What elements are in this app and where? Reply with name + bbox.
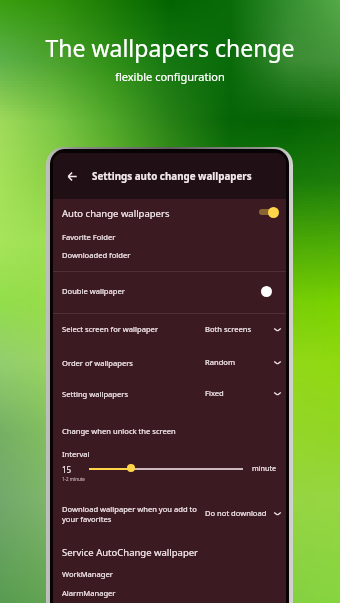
button[interactable]: WorkManager: [62, 568, 113, 579]
button[interactable]: Change when unlock the screen: [62, 425, 176, 436]
button[interactable]: Interval: [62, 448, 90, 459]
staticText: WorkManager: [62, 569, 113, 579]
button[interactable]: Back: [64, 168, 80, 184]
button[interactable]: Setting wallpapers: [62, 388, 129, 399]
staticText: Settings auto change wallpapers: [92, 170, 252, 183]
staticText: Both screens: [205, 324, 252, 334]
staticText: Service AutoChange wallpaper: [62, 546, 199, 559]
staticText: Do not download: [205, 508, 267, 518]
staticText: flexible configuration: [115, 69, 225, 84]
button[interactable]: Fixed: [205, 385, 281, 401]
button[interactable]: Do not download: [205, 505, 281, 521]
button[interactable]: Favorite Folder: [62, 231, 116, 242]
button[interactable]: your favorites: [62, 513, 112, 524]
staticText: your favorites: [62, 514, 112, 524]
staticText: Favorite Folder: [62, 232, 116, 242]
button[interactable]: Double wallpaper: [62, 285, 125, 296]
button[interactable]: 1-2 minute: [62, 475, 85, 482]
staticText: Auto change wallpapers: [62, 207, 170, 220]
staticText: Select screen for wallpaper: [62, 324, 159, 334]
button[interactable]: Select screen for wallpaper: [62, 323, 159, 334]
button[interactable]: Both screens: [205, 321, 281, 337]
staticText: Double wallpaper: [62, 286, 125, 296]
button[interactable]: Auto change wallpapers: [62, 206, 170, 220]
button[interactable]: AlarmManager: [62, 587, 116, 598]
staticText: Setting wallpapers: [62, 389, 129, 399]
staticText: Random: [205, 357, 236, 367]
staticText: Change when unlock the screen: [62, 426, 176, 436]
staticText: Order of wallpapers: [62, 358, 133, 368]
staticText: Download wallpaper when you add to: [62, 504, 197, 514]
button[interactable]: Auto change wallpapers toggle: [256, 204, 282, 220]
staticText: 1-2 minute: [62, 476, 85, 482]
staticText: 15: [62, 464, 72, 475]
button[interactable]: Double wallpaper toggle: [256, 283, 282, 299]
staticText: Downloaded folder: [62, 250, 131, 260]
button[interactable]: Service AutoChange wallpaper: [62, 545, 199, 559]
staticText: AlarmManager: [62, 588, 116, 598]
button[interactable]: 15: [62, 463, 72, 475]
staticText: The wallpapers chenge: [45, 32, 295, 63]
staticText: minute: [252, 463, 277, 473]
button[interactable]: Order of wallpapers: [62, 357, 133, 368]
button[interactable]: Random: [205, 354, 281, 370]
staticText: Interval: [62, 449, 90, 459]
staticText: Fixed: [205, 388, 224, 398]
button[interactable]: Downloaded folder: [62, 249, 131, 260]
button[interactable]: Download wallpaper when you add to: [62, 503, 197, 514]
